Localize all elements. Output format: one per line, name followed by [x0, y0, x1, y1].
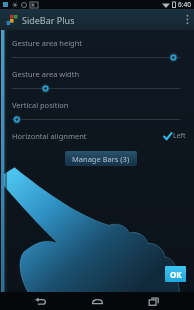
staticText: 6:40	[178, 0, 191, 9]
button[interactable]: More options	[180, 9, 194, 30]
staticText: Gesture area width	[12, 69, 80, 79]
staticText: SideBar Plus	[22, 14, 75, 26]
button[interactable]: OK	[165, 266, 186, 282]
button[interactable]: Horizontal alignment	[12, 130, 186, 142]
staticText: Gesture area height	[12, 38, 83, 48]
button[interactable]: Vertical position	[12, 100, 186, 124]
button[interactable]: Back	[25, 292, 55, 310]
staticText: Left	[173, 131, 186, 141]
button[interactable]: App icon	[6, 14, 18, 26]
staticText: Horizontal alignment	[12, 131, 87, 141]
button[interactable]: Recent apps	[139, 292, 169, 310]
staticText: OK	[170, 269, 182, 280]
button[interactable]: Gesture area height	[12, 38, 186, 62]
staticText: Vertical position	[12, 100, 69, 110]
button[interactable]: Gesture area width	[12, 69, 186, 93]
button[interactable]: Home	[82, 292, 112, 310]
button[interactable]: Manage Bars (3)	[65, 151, 137, 166]
staticText: Manage Bars (3)	[72, 154, 130, 164]
